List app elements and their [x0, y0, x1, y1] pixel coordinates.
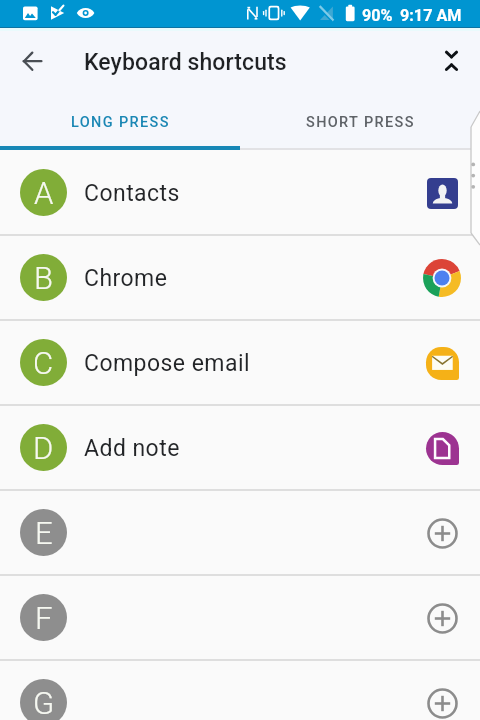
staticText: B	[34, 260, 53, 296]
button[interactable]: D	[0, 406, 480, 489]
staticText: Add note	[84, 435, 180, 462]
staticText: 9:17 AM	[400, 6, 462, 25]
button[interactable]: G	[0, 661, 480, 720]
staticText: F	[35, 600, 53, 636]
staticText: Chrome	[84, 265, 168, 292]
button[interactable]: A	[0, 151, 480, 234]
button[interactable]: C	[0, 321, 480, 404]
staticText: Contacts	[84, 180, 180, 207]
staticText: C	[33, 345, 54, 381]
button[interactable]: Back	[9, 37, 57, 85]
staticText: 90%	[362, 6, 393, 25]
staticText: LONG PRESS	[71, 114, 170, 131]
button[interactable]: E	[0, 491, 480, 574]
staticText: E	[35, 515, 53, 551]
staticText: SHORT PRESS	[306, 114, 415, 131]
button[interactable]: F	[0, 576, 480, 659]
staticText: A	[34, 175, 54, 211]
staticText: Keyboard shortcuts	[84, 49, 287, 76]
button[interactable]: Collapse	[428, 37, 476, 85]
staticText: Compose email	[84, 350, 250, 377]
staticText: D	[33, 430, 54, 466]
staticText: G	[33, 685, 55, 720]
button[interactable]: B	[0, 236, 480, 319]
button[interactable]: LONG PRESS	[0, 94, 240, 150]
button[interactable]: SHORT PRESS	[240, 94, 480, 150]
